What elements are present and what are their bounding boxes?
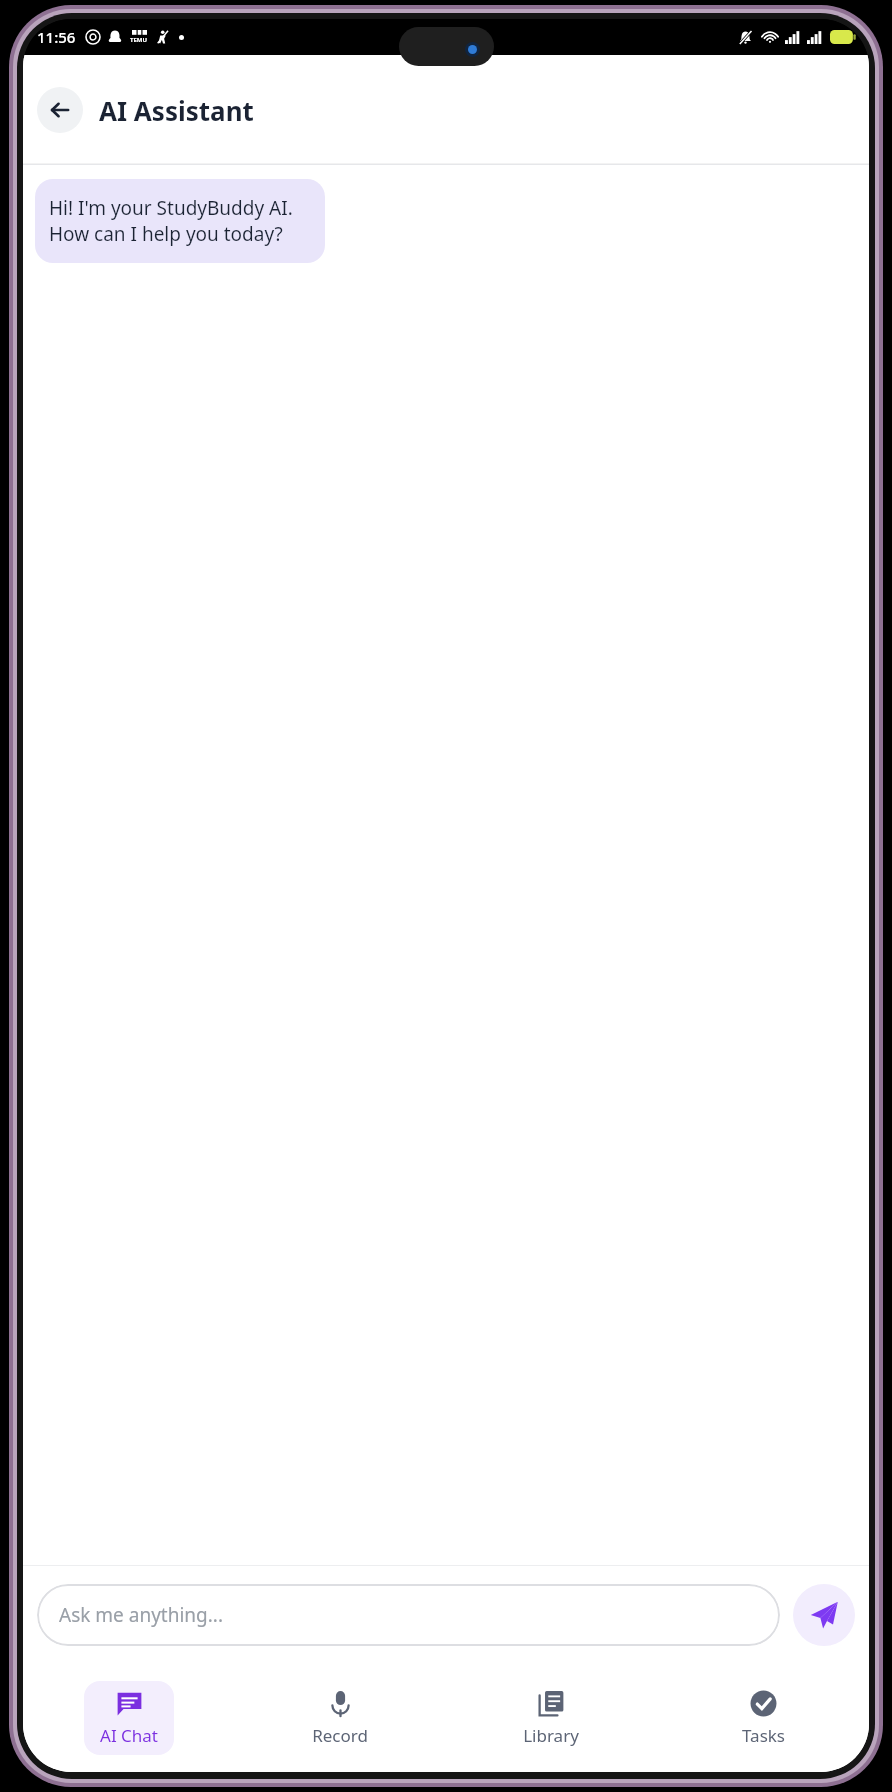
button[interactable]: Library xyxy=(506,1681,596,1755)
button[interactable]: Record xyxy=(295,1681,385,1755)
button[interactable]: Ask me anything... xyxy=(37,1584,780,1646)
button[interactable]: Hi! I'm your StudyBuddy AI. How can I he… xyxy=(35,179,325,263)
staticText: AI Assistant xyxy=(99,93,254,128)
staticText: Hi! I'm your StudyBuddy AI. How can I he… xyxy=(49,195,311,247)
staticText: Tasks xyxy=(742,1724,785,1747)
staticText: 11:56 xyxy=(37,27,76,47)
staticText: TEMU xyxy=(130,36,148,44)
button[interactable]: Send xyxy=(793,1584,855,1646)
staticText: Record xyxy=(312,1724,368,1747)
staticText: Library xyxy=(523,1724,579,1747)
button[interactable]: Tasks xyxy=(718,1681,808,1755)
staticText: Ask me anything... xyxy=(59,1602,224,1628)
staticText: AI Chat xyxy=(100,1724,158,1747)
button[interactable]: Back xyxy=(37,87,83,133)
button[interactable]: AI Chat xyxy=(84,1681,174,1755)
